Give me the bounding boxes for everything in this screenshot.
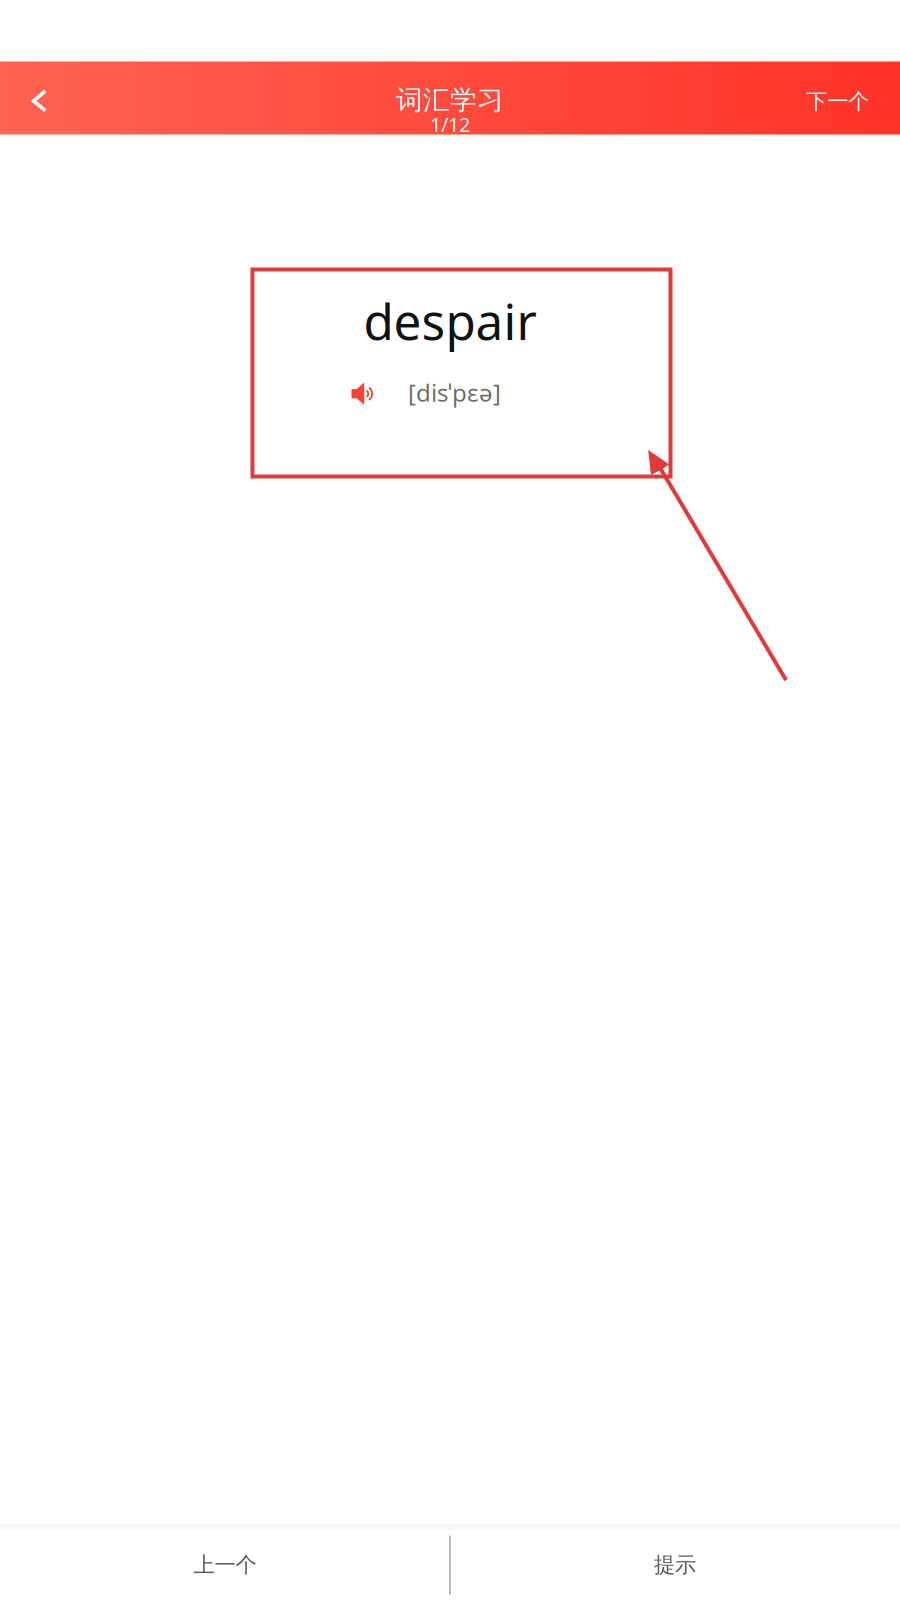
staticText: 下一个: [806, 88, 869, 115]
staticText: 词汇学习: [396, 84, 504, 116]
button[interactable]: 下一个: [778, 61, 900, 134]
staticText: 提示: [654, 1552, 696, 1578]
button[interactable]: Back: [0, 61, 76, 134]
staticText: despair: [363, 288, 536, 353]
button[interactable]: 提示: [450, 1530, 900, 1600]
button[interactable]: 上一个: [0, 1530, 450, 1600]
staticText: 1/12: [430, 111, 470, 137]
button[interactable]: despair: [0, 136, 900, 1524]
staticText: 上一个: [193, 1552, 256, 1578]
staticText: [disˈpɛə]: [408, 376, 501, 408]
